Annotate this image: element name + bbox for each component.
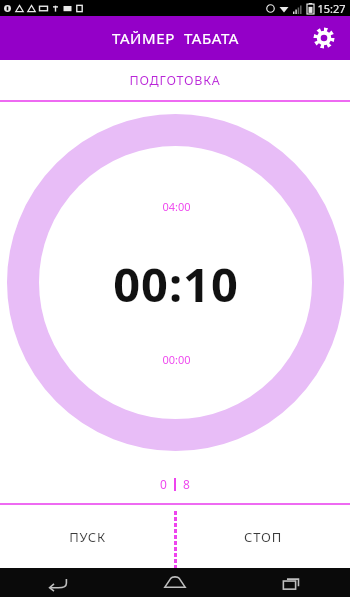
staticText: СТОП [244, 528, 282, 546]
staticText: 00:00 [162, 352, 191, 367]
staticText: 00:10 [113, 252, 239, 316]
button[interactable]: СТОП [175, 505, 350, 568]
staticText: ПОДГОТОВКА [129, 72, 221, 89]
staticText: ПУСК [69, 528, 106, 546]
button[interactable]: Recent apps [233, 568, 350, 597]
button[interactable]: ПУСК [0, 505, 175, 568]
button[interactable]: Back [0, 568, 116, 597]
staticText: ТАЙМЕР ТАБАТА [112, 28, 239, 48]
staticText: 8 [183, 476, 190, 492]
button[interactable]: Home [116, 568, 233, 597]
button[interactable]: Settings [306, 20, 342, 56]
staticText: 15:27 [317, 1, 346, 16]
button[interactable]: ПОДГОТОВКА [0, 60, 350, 100]
staticText: 04:00 [162, 199, 191, 214]
staticText: 0 [160, 476, 167, 492]
